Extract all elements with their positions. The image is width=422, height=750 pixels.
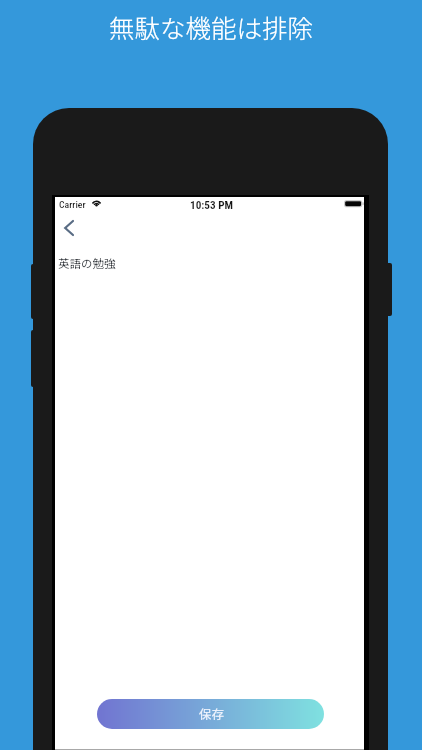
- staticText: 10:53 PM: [190, 199, 234, 212]
- staticText: 無駄な機能は排除: [109, 8, 314, 45]
- button[interactable]: 保存: [97, 699, 324, 729]
- staticText: Carrier: [59, 199, 86, 210]
- button[interactable]: Back: [54, 215, 84, 241]
- staticText: 保存: [199, 704, 225, 722]
- staticText: 英語の勉強: [58, 255, 116, 272]
